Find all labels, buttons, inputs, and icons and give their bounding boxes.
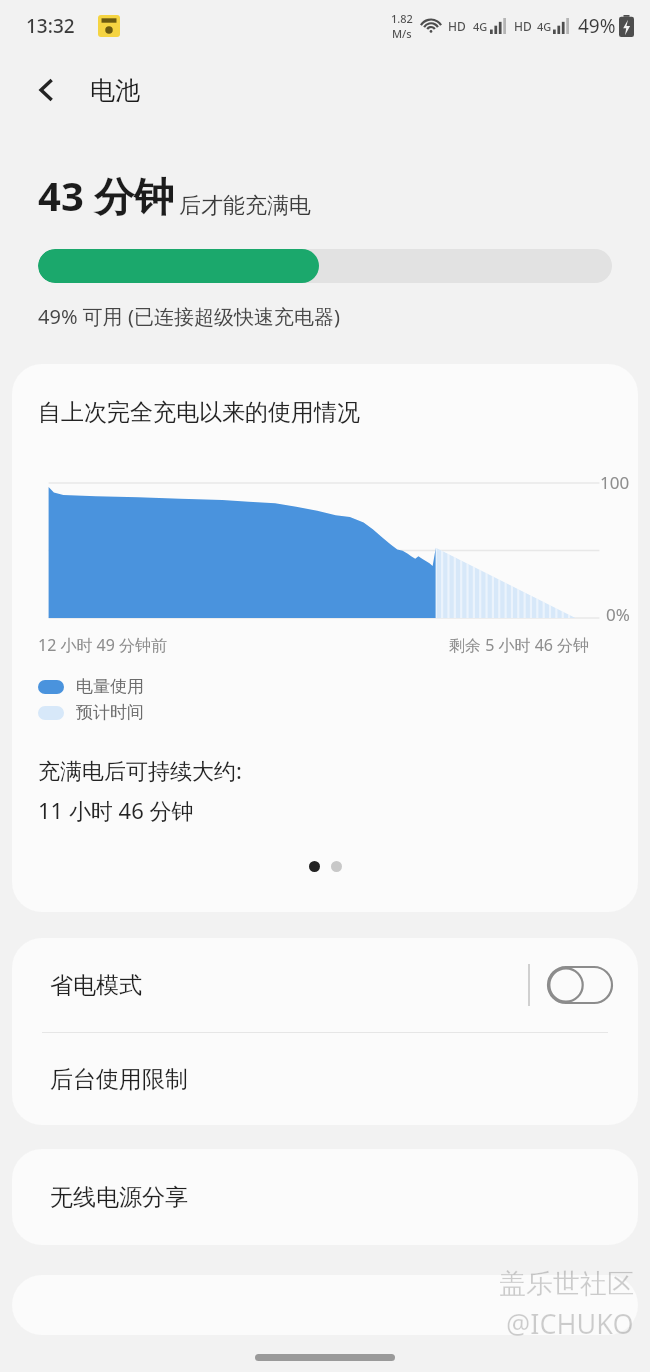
staticText: M/s	[392, 26, 412, 41]
staticText: 剩余 5 小时 46 分钟	[449, 634, 590, 656]
staticText: 无线电源分享	[50, 1183, 188, 1212]
staticText: 49% 可用 (已连接超级快速充电器)	[38, 303, 340, 330]
staticText: 100	[600, 471, 630, 494]
staticText: 0%	[606, 603, 630, 626]
staticText: 自上次完全充电以来的使用情况	[38, 398, 360, 427]
staticText: 49%	[578, 13, 616, 39]
staticText: HD	[514, 18, 532, 34]
staticText: 充满电后可持续大约:	[38, 755, 242, 785]
button[interactable]: 自上次完全充电以来的使用情况	[12, 364, 638, 912]
button[interactable]: Power saving mode toggle	[548, 967, 612, 1003]
staticText: 电池	[90, 75, 140, 106]
button[interactable]	[12, 1275, 638, 1335]
button[interactable]: 无线电源分享	[12, 1149, 638, 1245]
staticText: 4G	[473, 19, 488, 34]
button[interactable]: 省电模式	[12, 938, 638, 1032]
staticText: 11 小时 46 分钟	[38, 795, 194, 825]
staticText: 后台使用限制	[50, 1065, 188, 1094]
staticText: 43 分钟	[38, 168, 175, 223]
staticText: HD	[448, 18, 466, 34]
staticText: 盖乐世社区	[499, 1267, 634, 1301]
staticText: 1.82	[391, 11, 413, 26]
staticText: 电量使用	[76, 676, 144, 697]
staticText: 13:32	[26, 13, 75, 39]
staticText: @ICHUKO	[506, 1305, 634, 1342]
staticText: 省电模式	[50, 971, 528, 1000]
button[interactable]: Back	[22, 65, 72, 115]
staticText: 后才能充满电	[179, 192, 311, 220]
button[interactable]: 后台使用限制	[12, 1033, 638, 1125]
staticText: 12 小时 49 分钟前	[38, 634, 168, 656]
staticText: 预计时间	[76, 702, 144, 723]
staticText: 4G	[537, 19, 552, 34]
